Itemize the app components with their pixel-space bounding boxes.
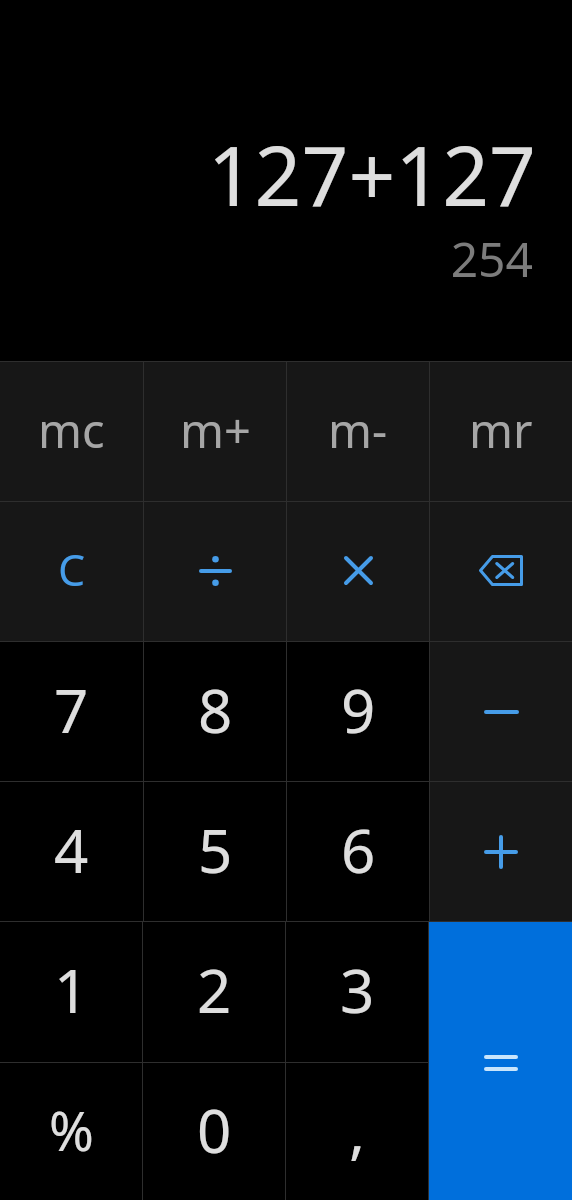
- staticText: 1: [54, 949, 89, 1031]
- button[interactable]: C: [0, 502, 143, 641]
- staticText: 254: [450, 226, 533, 291]
- button[interactable]: 2: [143, 922, 285, 1062]
- staticText: m-: [328, 398, 388, 462]
- staticText: 127+127: [207, 118, 536, 230]
- button[interactable]: m-: [287, 362, 429, 501]
- staticText: 0: [197, 1089, 232, 1171]
- staticText: mr: [469, 398, 533, 462]
- staticText: 2: [197, 949, 232, 1031]
- button[interactable]: 4: [0, 782, 143, 921]
- staticText: 3: [340, 949, 375, 1031]
- staticText: 5: [198, 809, 233, 891]
- staticText: m+: [180, 398, 251, 462]
- button[interactable]: %: [0, 1063, 142, 1200]
- button[interactable]: 0: [143, 1063, 285, 1200]
- staticText: mc: [38, 398, 105, 462]
- button[interactable]: mr: [430, 362, 572, 501]
- button[interactable]: 1: [0, 922, 142, 1062]
- button[interactable]: 5: [144, 782, 286, 921]
- staticText: 8: [198, 669, 233, 751]
- button[interactable]: 6: [287, 782, 429, 921]
- button[interactable]: Multiply: [287, 502, 429, 641]
- staticText: %: [49, 1093, 94, 1167]
- button[interactable]: 7: [0, 642, 143, 781]
- button[interactable]: Backspace: [430, 502, 572, 641]
- staticText: 7: [54, 669, 89, 751]
- button[interactable]: 3: [286, 922, 428, 1062]
- button[interactable]: m+: [144, 362, 286, 501]
- button[interactable]: mc: [0, 362, 143, 501]
- button[interactable]: ,: [286, 1063, 428, 1200]
- staticText: ,: [349, 1089, 366, 1171]
- button[interactable]: 9: [287, 642, 429, 781]
- staticText: 9: [341, 669, 376, 751]
- staticText: 4: [54, 809, 89, 891]
- staticText: 6: [341, 809, 376, 891]
- button[interactable]: 8: [144, 642, 286, 781]
- staticText: C: [58, 540, 86, 599]
- button[interactable]: Divide: [144, 502, 286, 641]
- button[interactable]: Plus: [430, 782, 572, 921]
- button[interactable]: Minus: [430, 642, 572, 781]
- button[interactable]: Equals: [429, 922, 572, 1200]
